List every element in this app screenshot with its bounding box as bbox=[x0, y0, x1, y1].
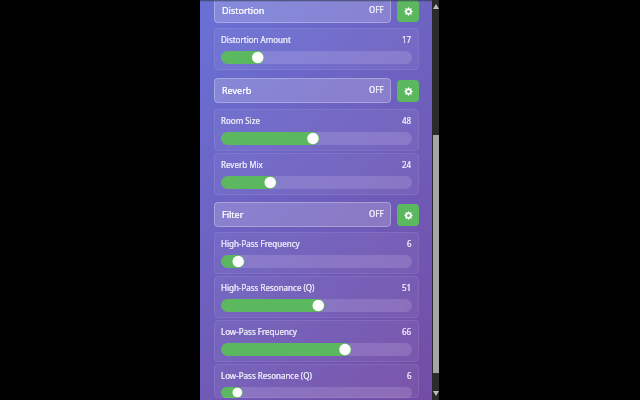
staticText: 51 bbox=[402, 282, 412, 293]
staticText: Distortion bbox=[222, 4, 265, 16]
button[interactable]: Scrollbar bbox=[432, 0, 439, 400]
button[interactable]: Settings bbox=[397, 204, 419, 226]
staticText: Low-Pass Frequency bbox=[221, 326, 297, 337]
button[interactable] bbox=[221, 51, 412, 64]
button[interactable]: Settings bbox=[397, 80, 419, 102]
button[interactable] bbox=[221, 132, 412, 145]
staticText: 48 bbox=[402, 115, 412, 126]
staticText: Room Size bbox=[221, 115, 260, 126]
staticText: Low-Pass Resonance (Q) bbox=[221, 370, 312, 381]
staticText: High-Pass Frequency bbox=[221, 238, 300, 249]
button[interactable] bbox=[221, 255, 412, 268]
staticText: OFF bbox=[369, 208, 384, 219]
button[interactable] bbox=[221, 387, 412, 398]
staticText: Reverb Mix bbox=[221, 159, 263, 170]
button[interactable] bbox=[221, 176, 412, 189]
staticText: High-Pass Resonance (Q) bbox=[221, 282, 315, 293]
button[interactable]: Reverb bbox=[214, 78, 391, 103]
staticText: Filter bbox=[222, 208, 244, 220]
button[interactable]: Filter bbox=[214, 202, 391, 227]
staticText: OFF bbox=[369, 84, 384, 95]
button[interactable]: Settings bbox=[397, 0, 419, 22]
staticText: Reverb bbox=[222, 84, 252, 96]
staticText: Distortion Amount bbox=[221, 34, 291, 45]
staticText: OFF bbox=[369, 4, 384, 15]
staticText: 6 bbox=[407, 370, 412, 381]
button[interactable] bbox=[221, 343, 412, 356]
button[interactable]: Distortion bbox=[214, 0, 391, 23]
button[interactable] bbox=[221, 299, 412, 312]
staticText: 17 bbox=[402, 34, 412, 45]
staticText: 24 bbox=[402, 159, 412, 170]
staticText: 6 bbox=[407, 238, 412, 249]
staticText: 66 bbox=[402, 326, 412, 337]
